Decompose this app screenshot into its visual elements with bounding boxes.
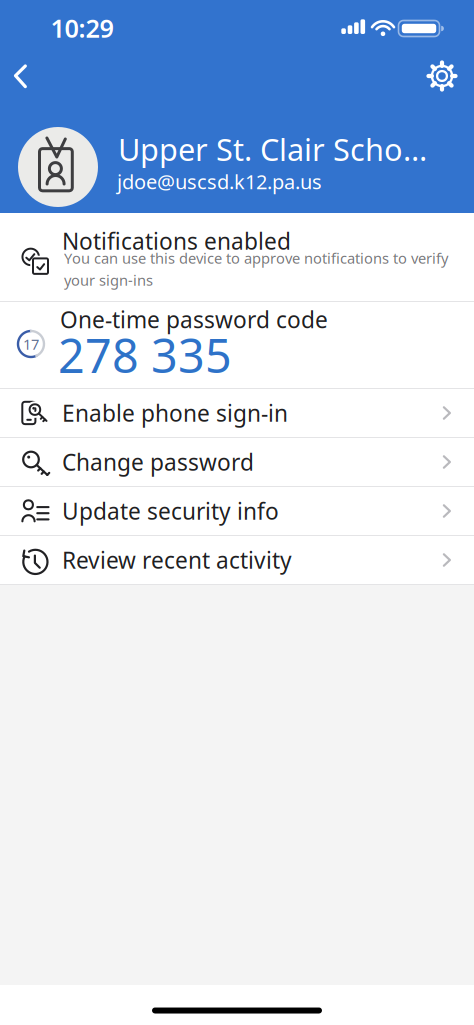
staticText: 10:29 bbox=[50, 11, 113, 45]
button[interactable]: Settings bbox=[420, 54, 464, 98]
staticText: Upper St. Clair Scho… bbox=[118, 129, 427, 169]
staticText: 278 335 bbox=[58, 324, 232, 386]
staticText: 17 bbox=[23, 334, 39, 354]
button[interactable]: Update security info bbox=[0, 487, 474, 535]
staticText: You can use this device to approve notif… bbox=[64, 248, 448, 290]
staticText: Update security info bbox=[62, 496, 279, 526]
button[interactable]: Change password bbox=[0, 438, 474, 486]
button[interactable]: Back bbox=[5, 56, 49, 96]
button[interactable]: Review recent activity bbox=[0, 536, 474, 584]
staticText: Change password bbox=[62, 447, 254, 477]
staticText: Review recent activity bbox=[62, 545, 292, 575]
staticText: jdoe@uscsd.k12.pa.us bbox=[117, 168, 322, 195]
button[interactable]: 17 bbox=[0, 302, 474, 388]
staticText: One-time password code bbox=[60, 304, 328, 334]
staticText: Enable phone sign-in bbox=[62, 398, 288, 428]
button[interactable]: Enable phone sign-in bbox=[0, 389, 474, 437]
staticText: Notifications enabled bbox=[62, 226, 291, 256]
